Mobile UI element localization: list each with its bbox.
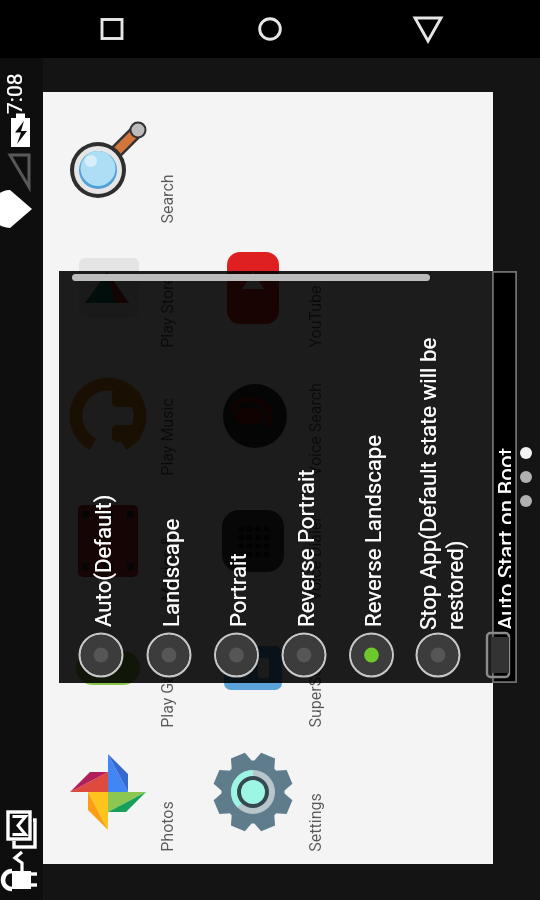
button[interactable]: Recent apps (82, 0, 142, 58)
staticText: Search (158, 174, 177, 224)
staticText: Movies & … (158, 521, 177, 601)
staticText: Reverse Landscape (360, 434, 386, 627)
staticText: Play Store (158, 276, 177, 348)
button[interactable]: Home (240, 0, 300, 58)
staticText: Auto Start on Boot (493, 448, 511, 630)
staticText: Stop App(Default state will be restored) (415, 330, 468, 630)
staticText: Photos (158, 801, 177, 852)
staticText: Reverse Portrait (293, 469, 319, 627)
staticText: Settings (306, 793, 325, 852)
staticText: YouTube (306, 285, 325, 348)
staticText: 7:08 (3, 73, 28, 114)
staticText: Auto(Default) (90, 494, 116, 627)
button[interactable]: Back (398, 0, 458, 58)
staticText: Play Music (158, 398, 177, 476)
staticText: SuperSU (306, 666, 325, 728)
staticText: Voice Dialer (306, 516, 325, 601)
staticText: Play Games (158, 643, 177, 728)
staticText: Portrait (225, 553, 251, 627)
staticText: Landscape (158, 518, 184, 627)
staticText: Voice Search (306, 383, 325, 476)
